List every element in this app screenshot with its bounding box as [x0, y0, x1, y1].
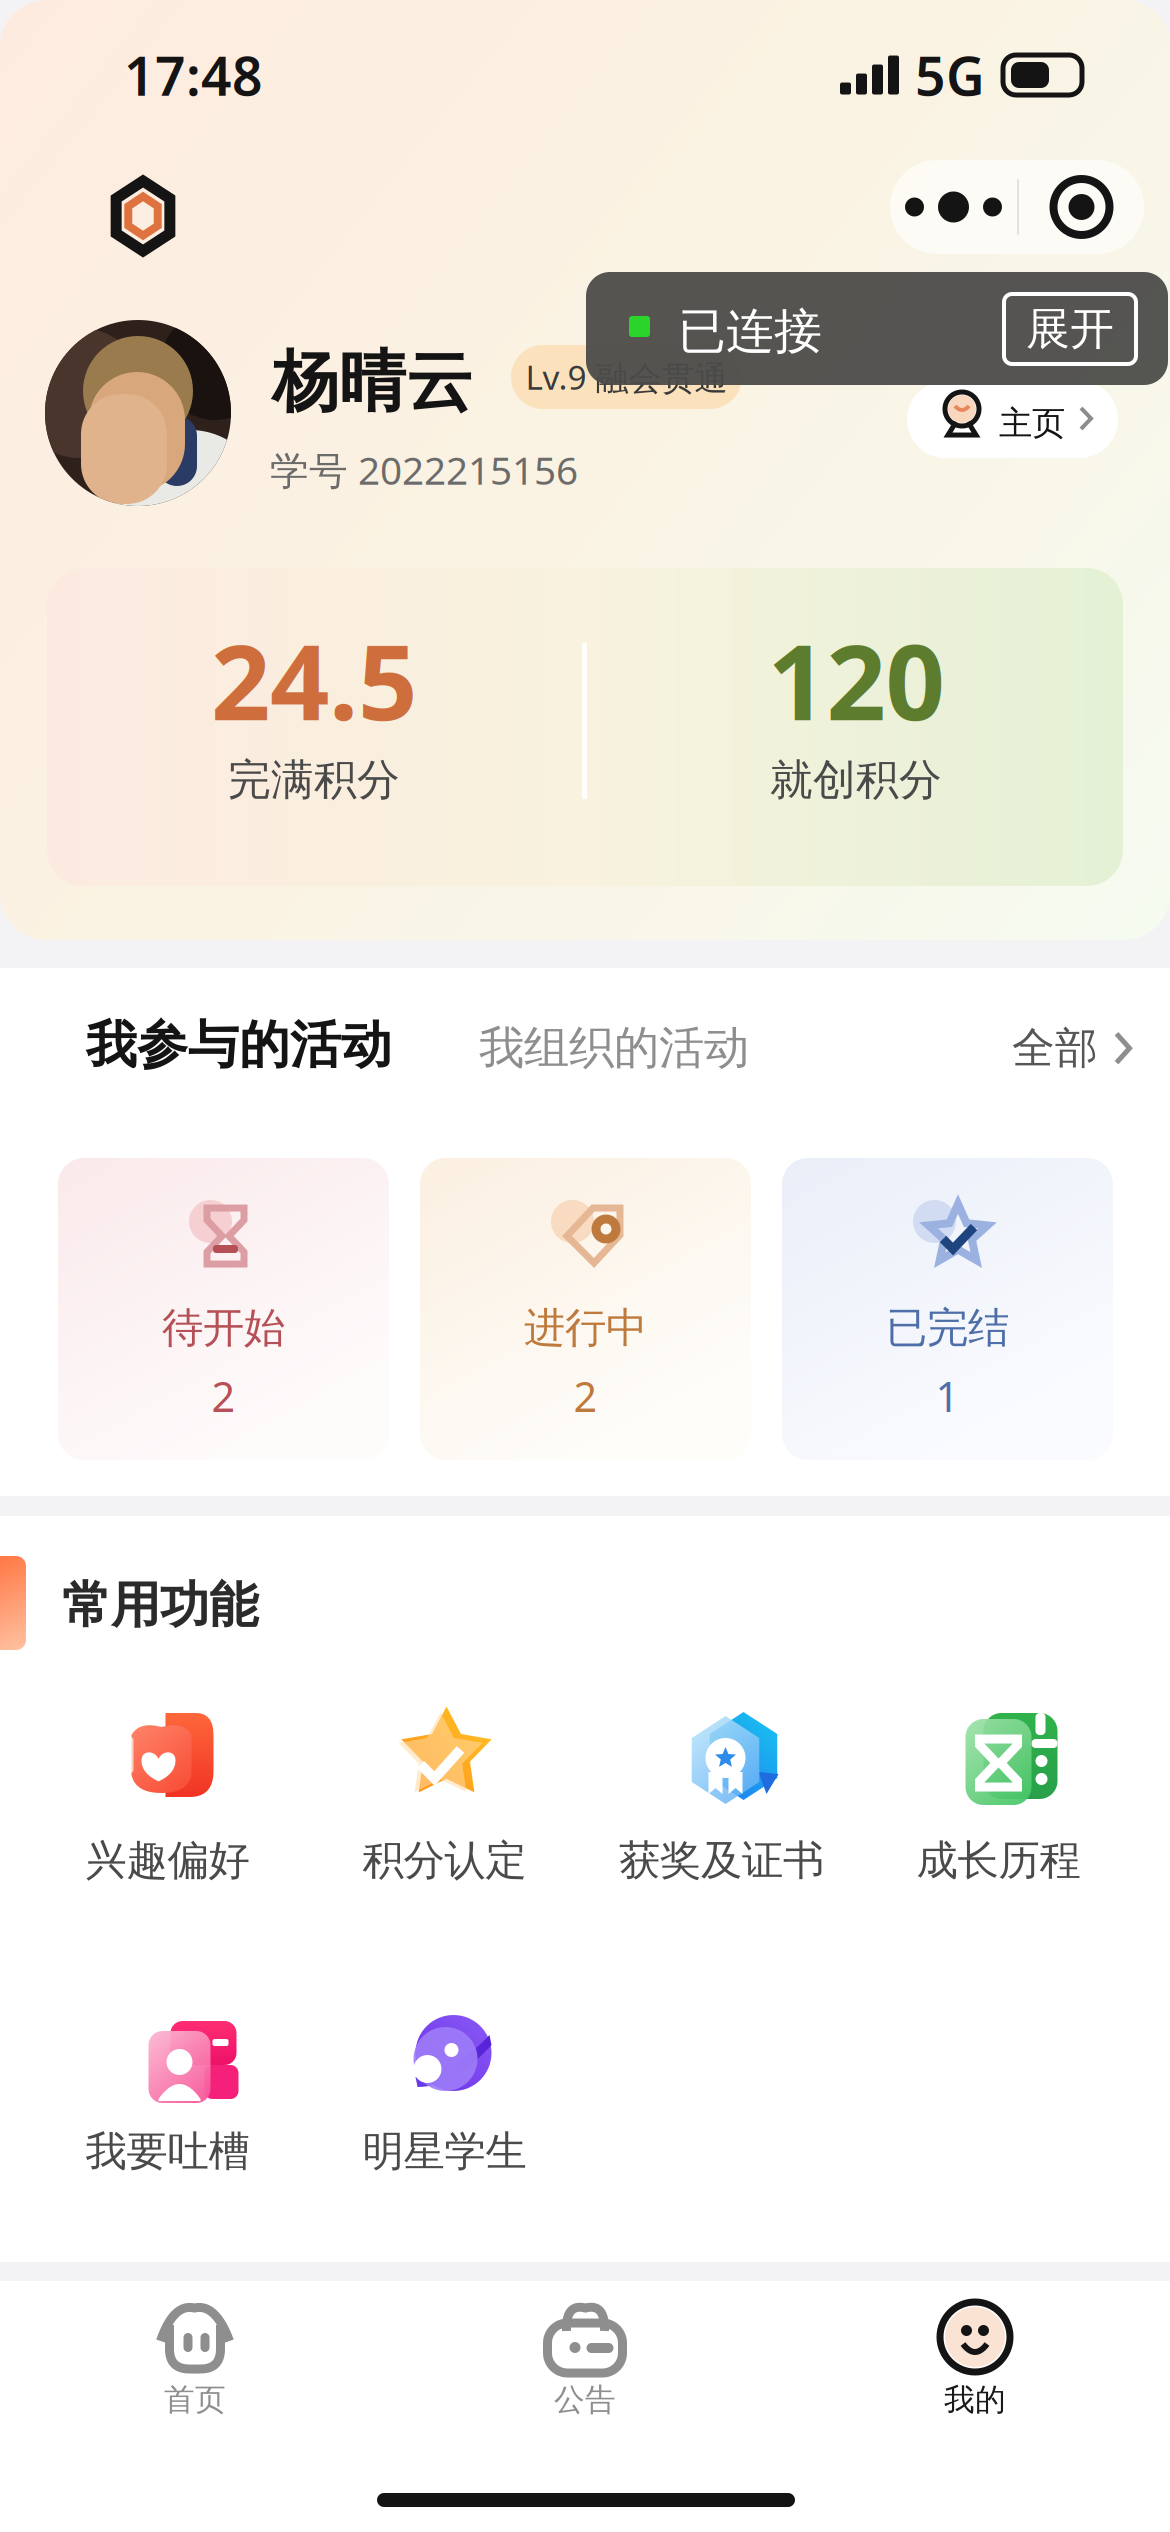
- button[interactable]: Logo: [105, 178, 181, 254]
- staticText: 待开始: [162, 1303, 285, 1353]
- button[interactable]: Close: [1017, 160, 1144, 254]
- staticText: 我组织的活动: [479, 1020, 749, 1076]
- staticText: 120: [767, 611, 944, 749]
- staticText: 我的: [944, 2381, 1006, 2419]
- button[interactable]: 成长历程: [860, 1698, 1137, 1894]
- button[interactable]: 展开: [1004, 294, 1136, 364]
- staticText: 公告: [554, 2381, 616, 2419]
- button[interactable]: 主页: [907, 381, 1118, 458]
- button[interactable]: 待开始: [58, 1158, 389, 1460]
- button[interactable]: 全部: [1012, 1022, 1132, 1074]
- staticText: 成长历程: [916, 1835, 1080, 1886]
- staticText: 明星学生: [362, 2126, 526, 2177]
- staticText: 2: [211, 1369, 235, 1423]
- staticText: 杨晴云: [272, 341, 473, 423]
- button[interactable]: More: [890, 160, 1017, 254]
- staticText: 获奖及证书: [619, 1835, 824, 1886]
- staticText: 展开: [1026, 302, 1114, 356]
- staticText: 17:48: [124, 40, 263, 110]
- staticText: 兴趣偏好: [85, 1835, 249, 1886]
- button[interactable]: 我要吐槽: [29, 1989, 306, 2185]
- staticText: 主页: [999, 403, 1065, 444]
- staticText: 已完结: [886, 1303, 1009, 1353]
- button[interactable]: 我组织的活动: [479, 1020, 749, 1076]
- staticText: 已连接: [678, 302, 822, 361]
- button[interactable]: 公告: [390, 2281, 780, 2441]
- staticText: 完满积分: [228, 754, 400, 806]
- button[interactable]: 获奖及证书: [583, 1698, 860, 1894]
- button[interactable]: 首页: [0, 2281, 390, 2441]
- button[interactable]: 明星学生: [306, 1989, 583, 2185]
- button[interactable]: 进行中: [420, 1158, 751, 1460]
- staticText: 就创积分: [770, 754, 942, 806]
- button[interactable]: 我的: [780, 2281, 1170, 2441]
- staticText: 学号 2022215156: [270, 444, 578, 495]
- staticText: 1: [935, 1369, 959, 1423]
- staticText: 进行中: [524, 1303, 647, 1353]
- button[interactable]: 已完结: [782, 1158, 1113, 1460]
- staticText: 积分认定: [362, 1835, 526, 1886]
- staticText: 我要吐槽: [85, 2126, 249, 2177]
- staticText: 我参与的活动: [86, 1014, 392, 1076]
- staticText: 首页: [164, 2381, 226, 2419]
- staticText: 常用功能: [62, 1575, 258, 1636]
- staticText: 2: [573, 1369, 597, 1423]
- staticText: Lv.9 融会贯通: [525, 355, 727, 399]
- staticText: 5G: [915, 40, 985, 110]
- button[interactable]: 兴趣偏好: [29, 1698, 306, 1894]
- button[interactable]: 我参与的活动: [86, 1014, 392, 1076]
- staticText: 24.5: [211, 611, 417, 749]
- button[interactable]: 积分认定: [306, 1698, 583, 1894]
- staticText: 全部: [1012, 1022, 1098, 1074]
